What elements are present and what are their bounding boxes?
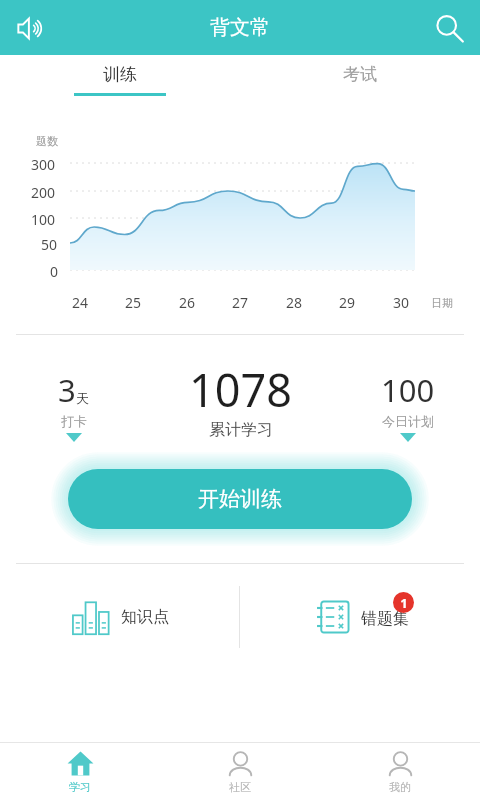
staticText: 100 xyxy=(31,210,56,229)
staticText: 打卡 xyxy=(61,413,87,429)
button[interactable]: 训练 xyxy=(0,55,240,101)
staticText: 我的 xyxy=(389,780,411,794)
button[interactable]: 学习 xyxy=(0,743,160,800)
staticText: 今日计划 xyxy=(382,413,434,429)
staticText: 训练 xyxy=(103,64,137,85)
staticText: 1 xyxy=(400,594,408,612)
staticText: 3 xyxy=(58,369,76,411)
staticText: 考试 xyxy=(343,64,377,85)
staticText: 天 xyxy=(76,390,89,406)
staticText: 0 xyxy=(50,262,59,281)
staticText: 300 xyxy=(31,155,56,174)
staticText: 知识点 xyxy=(121,607,169,627)
staticText: 29 xyxy=(339,293,356,312)
staticText: 日期 xyxy=(431,296,453,310)
staticText: 错题集 xyxy=(361,609,409,629)
staticText: 30 xyxy=(393,293,410,312)
button[interactable]: 社区 xyxy=(160,743,320,800)
staticText: 100 xyxy=(381,369,435,411)
button[interactable]: 开始训练 xyxy=(68,469,412,529)
staticText: 200 xyxy=(31,183,56,202)
staticText: 题数 xyxy=(36,134,58,148)
button[interactable]: 我的 xyxy=(320,743,480,800)
staticText: 累计学习 xyxy=(209,420,273,440)
button[interactable]: Search xyxy=(424,3,474,53)
staticText: 26 xyxy=(179,293,196,312)
button[interactable]: 考试 xyxy=(240,55,480,101)
staticText: 50 xyxy=(41,235,58,254)
button[interactable]: Sound xyxy=(6,4,54,52)
staticText: 开始训练 xyxy=(198,486,282,512)
staticText: 27 xyxy=(232,293,249,312)
staticText: 学习 xyxy=(69,780,91,794)
staticText: 1078 xyxy=(189,359,292,420)
staticText: 25 xyxy=(125,293,142,312)
button[interactable]: 知识点 xyxy=(0,564,239,669)
staticText: 社区 xyxy=(229,780,251,794)
button[interactable]: 错题集 xyxy=(240,564,480,669)
staticText: 24 xyxy=(72,293,89,312)
staticText: 28 xyxy=(286,293,303,312)
staticText: 背文常 xyxy=(210,15,270,40)
